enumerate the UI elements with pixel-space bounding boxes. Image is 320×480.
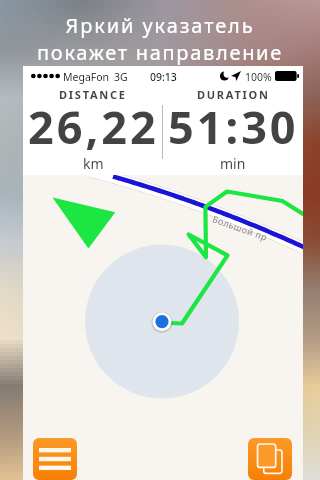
staticText: 3G xyxy=(114,70,128,84)
staticText: DISTANCE xyxy=(59,87,127,102)
staticText: 26,22 xyxy=(28,96,159,157)
staticText: 51:30 xyxy=(168,96,299,157)
staticText: Большой пр xyxy=(211,212,270,243)
staticText: MegaFon xyxy=(63,70,110,84)
staticText: Яркий указатель xyxy=(65,12,255,39)
staticText: min xyxy=(220,154,246,173)
staticText: DURATION xyxy=(197,87,270,102)
staticText: 100% xyxy=(245,70,272,84)
button[interactable]: Menu xyxy=(33,438,77,480)
button[interactable]: Layers xyxy=(248,438,292,480)
staticText: km xyxy=(83,154,104,173)
staticText: 09:13 xyxy=(150,70,177,84)
staticText: покажет направление xyxy=(37,39,283,66)
